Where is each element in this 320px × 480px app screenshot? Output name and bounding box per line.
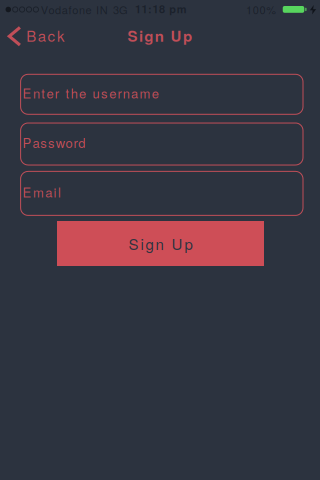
staticText: l bbox=[58, 183, 61, 201]
staticText: S bbox=[127, 25, 137, 46]
button[interactable]: Enter the username bbox=[21, 74, 303, 114]
staticText: V bbox=[41, 2, 48, 17]
staticText: m bbox=[139, 83, 150, 102]
staticText: I bbox=[96, 2, 99, 17]
button[interactable]: Back bbox=[7, 25, 65, 47]
staticText: a bbox=[32, 133, 39, 152]
staticText: n bbox=[155, 233, 163, 254]
staticText: g bbox=[144, 25, 153, 46]
staticText: i bbox=[140, 233, 143, 254]
staticText: f bbox=[68, 2, 71, 17]
staticText: n bbox=[79, 2, 85, 17]
staticText: P bbox=[23, 133, 32, 152]
staticText: U bbox=[171, 233, 182, 254]
staticText: % bbox=[266, 2, 276, 17]
staticText: w bbox=[56, 133, 65, 152]
staticText: c bbox=[47, 24, 55, 46]
staticText: e bbox=[152, 83, 159, 102]
staticText: n bbox=[123, 83, 130, 102]
staticText: r bbox=[73, 133, 77, 152]
staticText: i bbox=[54, 183, 57, 201]
staticText: 1 bbox=[141, 1, 147, 17]
staticText: E bbox=[23, 183, 32, 201]
staticText: 0 bbox=[260, 2, 266, 17]
staticText: r bbox=[117, 83, 121, 102]
staticText: 1 bbox=[246, 2, 252, 17]
staticText: a bbox=[62, 2, 68, 17]
staticText: s bbox=[48, 133, 55, 152]
staticText: p bbox=[169, 1, 176, 17]
button[interactable]: Password bbox=[21, 123, 303, 165]
staticText: m bbox=[177, 1, 187, 17]
staticText: S bbox=[128, 233, 138, 254]
staticText: t bbox=[41, 83, 45, 102]
staticText: 3G bbox=[113, 2, 128, 17]
staticText: r bbox=[55, 83, 59, 102]
staticText: h bbox=[71, 83, 78, 102]
staticText: s bbox=[40, 133, 47, 152]
staticText: p bbox=[184, 233, 192, 254]
staticText: o bbox=[48, 2, 54, 17]
staticText: p bbox=[183, 25, 192, 46]
staticText: U bbox=[171, 25, 182, 46]
staticText: i bbox=[139, 25, 143, 46]
staticText: d bbox=[78, 133, 85, 152]
staticText: N bbox=[100, 2, 108, 17]
staticText: m bbox=[33, 183, 44, 201]
staticText: n bbox=[155, 25, 164, 46]
staticText: g bbox=[145, 233, 153, 254]
staticText: s bbox=[101, 83, 108, 102]
button[interactable]: S bbox=[57, 221, 264, 266]
staticText: 8 bbox=[159, 1, 165, 17]
staticText: 1 bbox=[135, 1, 141, 17]
staticText: u bbox=[93, 83, 100, 102]
staticText: e bbox=[46, 83, 53, 102]
button[interactable]: Email bbox=[21, 171, 303, 215]
staticText: d bbox=[55, 2, 61, 17]
staticText: E bbox=[23, 83, 32, 102]
staticText: o bbox=[66, 133, 73, 152]
staticText: a bbox=[131, 83, 138, 102]
staticText: o bbox=[72, 2, 78, 17]
staticText: a bbox=[45, 183, 52, 201]
staticText: e bbox=[79, 83, 86, 102]
staticText: t bbox=[65, 83, 69, 102]
staticText: e bbox=[86, 2, 92, 17]
staticText: a bbox=[38, 24, 46, 46]
staticText: n bbox=[33, 83, 40, 102]
staticText: B bbox=[26, 24, 36, 46]
staticText: : bbox=[148, 1, 152, 17]
staticText: k bbox=[57, 24, 65, 46]
staticText: 1 bbox=[152, 1, 158, 17]
staticText: e bbox=[109, 83, 116, 102]
staticText: 0 bbox=[253, 2, 259, 17]
